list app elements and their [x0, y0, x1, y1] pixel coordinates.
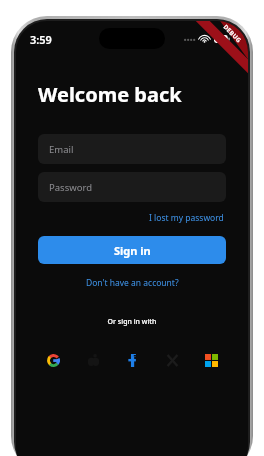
button[interactable]: I lost my password	[147, 211, 226, 225]
button[interactable]: Sign in with Facebook	[120, 348, 144, 372]
button[interactable]: Email	[38, 134, 226, 164]
staticText: Or sign in with	[38, 317, 226, 327]
button[interactable]: Password	[38, 172, 226, 202]
button[interactable]: Sign in with Google	[41, 348, 65, 372]
button[interactable]: Sign in with Apple	[81, 348, 105, 372]
button[interactable]: Sign in	[38, 236, 226, 264]
staticText: Sign in	[114, 243, 151, 258]
staticText: Email	[49, 143, 74, 156]
staticText: I lost my password	[149, 212, 224, 224]
button[interactable]: Sign in with X	[160, 348, 184, 372]
button[interactable]: Don't have an account?	[83, 276, 182, 290]
button[interactable]: Sign in with Microsoft	[199, 348, 223, 372]
staticText: 3:59	[30, 32, 52, 47]
staticText: Password	[49, 181, 92, 194]
staticText: DEBUG	[221, 23, 243, 45]
staticText: Welcome back	[38, 81, 182, 108]
staticText: Don't have an account?	[86, 277, 179, 289]
